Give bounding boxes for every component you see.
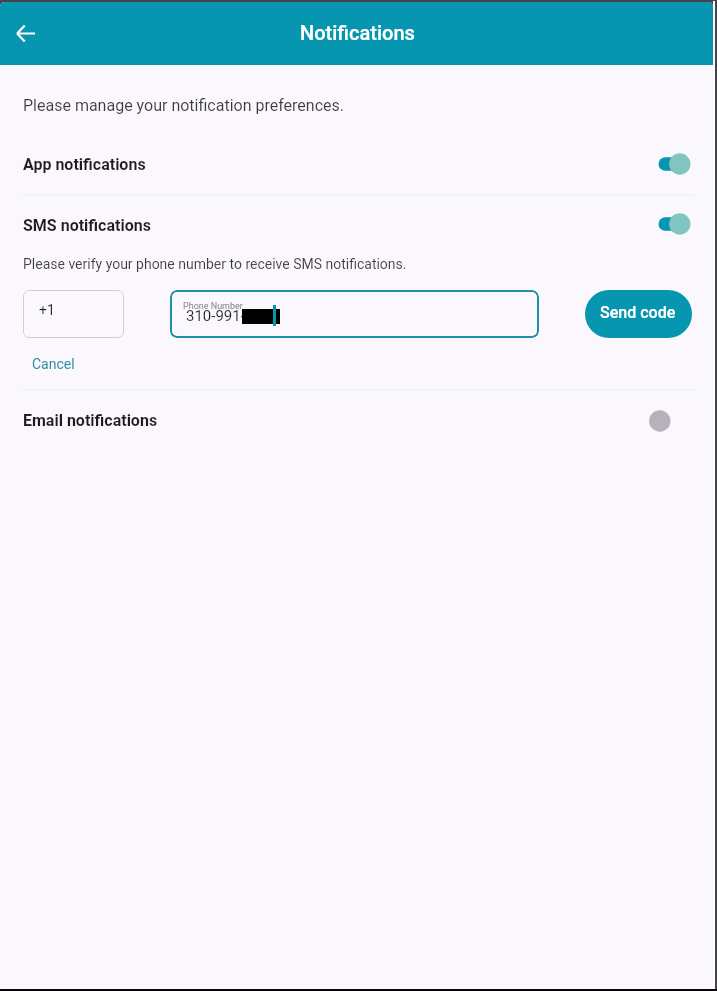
staticText: Please manage your notification preferen… xyxy=(23,96,344,115)
staticText: SMS notifications xyxy=(23,216,151,235)
button[interactable]: On xyxy=(634,209,682,239)
button[interactable]: Email notifications xyxy=(0,405,713,435)
staticText: Send code xyxy=(600,303,676,322)
staticText: Email notifications xyxy=(23,411,158,430)
staticText: Notifications xyxy=(300,21,415,44)
button[interactable]: Back xyxy=(4,12,46,54)
button[interactable]: Cancel xyxy=(24,352,83,376)
staticText: App notifications xyxy=(23,155,146,174)
button[interactable]: SMS notifications xyxy=(0,210,713,240)
staticText: +1 xyxy=(39,302,55,318)
button[interactable]: Phone Number xyxy=(170,290,539,338)
staticText: Cancel xyxy=(32,356,75,372)
staticText: Phone Number xyxy=(183,301,243,312)
button[interactable]: On xyxy=(634,149,682,179)
staticText: 310-991- xyxy=(186,307,245,325)
button[interactable]: App notifications xyxy=(0,149,713,179)
staticText: Please verify your phone number to recei… xyxy=(23,256,407,272)
button[interactable]: Off xyxy=(634,406,682,436)
button[interactable]: Send code xyxy=(585,290,692,338)
button[interactable]: +1 xyxy=(23,290,124,338)
